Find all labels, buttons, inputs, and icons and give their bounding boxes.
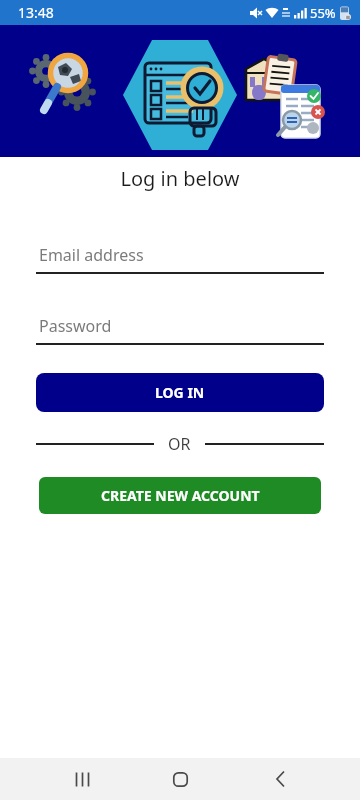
button[interactable] (164, 763, 196, 795)
staticText: CREATE NEW ACCOUNT (101, 486, 260, 505)
button[interactable] (265, 763, 297, 795)
staticText: 55% (310, 4, 336, 22)
button[interactable]: CREATE NEW ACCOUNT (39, 477, 321, 514)
button[interactable] (66, 763, 98, 795)
staticText: LOG IN (155, 383, 205, 402)
staticText: Log in below (0, 165, 360, 192)
button[interactable]: LOG IN (36, 373, 324, 412)
staticText: 13:48 (18, 3, 54, 22)
staticText: OR (168, 433, 191, 455)
staticText: Email address (39, 244, 144, 266)
staticText: Password (39, 315, 112, 337)
